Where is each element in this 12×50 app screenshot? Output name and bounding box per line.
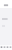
button[interactable]: Tab <box>0 44 3 50</box>
button[interactable]: Tab <box>9 44 12 50</box>
button[interactable]: Tab <box>6 44 9 50</box>
button[interactable]: Tab <box>3 44 6 50</box>
